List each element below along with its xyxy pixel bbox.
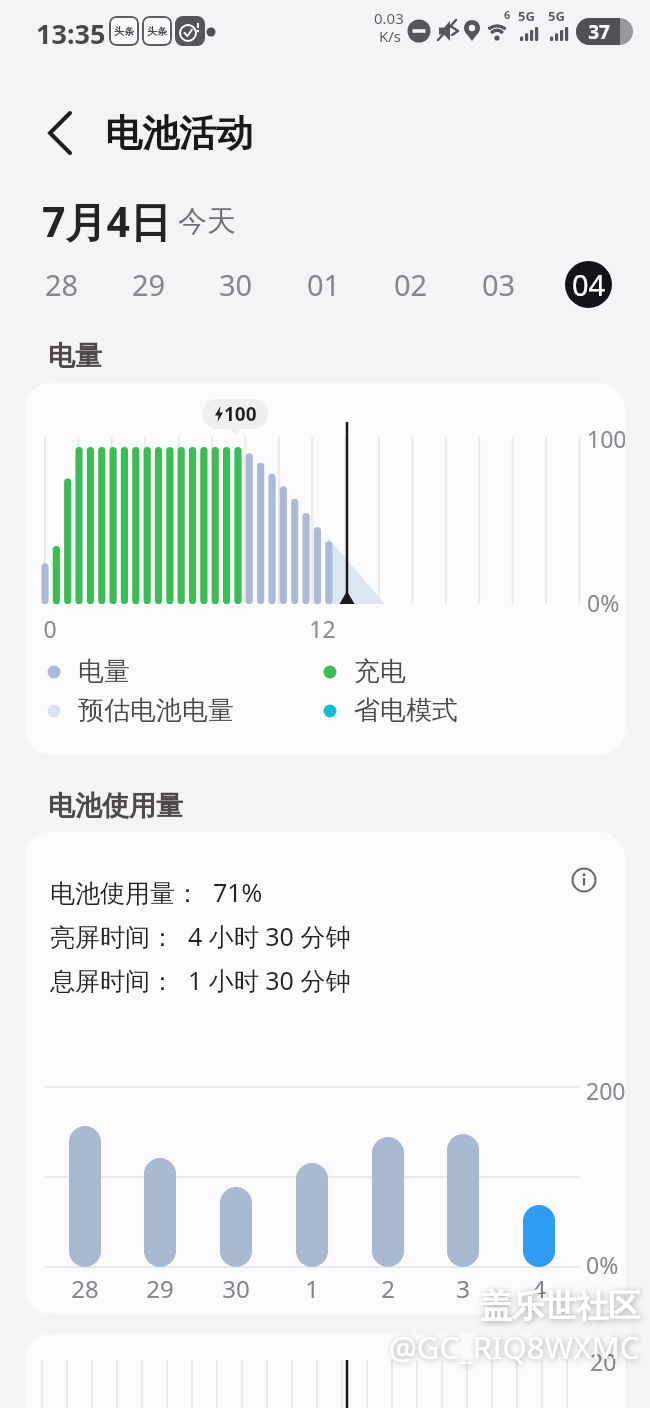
button[interactable]: 03 (469, 260, 529, 308)
staticText: @GC_RIQ8WXMC (389, 1326, 640, 1368)
button[interactable]: 28 (32, 260, 92, 308)
button[interactable] (30, 105, 86, 161)
staticText: 200 (586, 1075, 625, 1106)
staticText: 13:35 (36, 15, 106, 52)
staticText: 电量 (48, 339, 102, 373)
staticText: 20 (590, 1346, 617, 1377)
staticText: 37 (588, 19, 610, 45)
staticText: 100 (587, 423, 625, 454)
staticText: 0 (43, 613, 57, 644)
staticText: 充电 (354, 655, 406, 688)
staticText: 6 (504, 7, 511, 22)
staticText: 12 (309, 613, 336, 644)
button[interactable]: 30 (206, 260, 266, 308)
staticText: 28 (71, 1272, 99, 1305)
staticText: 01 (307, 265, 341, 304)
staticText: 电池活动 (105, 110, 253, 157)
staticText: 5G (548, 7, 565, 25)
staticText: 0% (586, 1249, 619, 1280)
button[interactable]: 04 (565, 261, 612, 308)
staticText: 28 (45, 265, 79, 304)
staticText: 电池使用量 (48, 789, 183, 823)
staticText: 100 (224, 401, 257, 427)
staticText: K/s (379, 26, 402, 46)
staticText: 1 (305, 1272, 319, 1305)
button[interactable] (570, 866, 598, 894)
staticText: 30 (219, 265, 253, 304)
staticText: 29 (132, 265, 166, 304)
staticText: 省电模式 (354, 694, 458, 727)
button[interactable]: 01 (294, 260, 354, 308)
staticText: 03 (482, 265, 516, 304)
staticText: 电池使用量： 71% (50, 875, 263, 909)
staticText: 电量 (78, 655, 130, 688)
staticText: 04 (572, 265, 606, 304)
staticText: 5G (518, 7, 535, 25)
staticText: 盖乐世社区 (480, 1286, 640, 1326)
staticText: 3 (456, 1272, 470, 1305)
button[interactable]: 02 (381, 260, 441, 308)
staticText: 头条 (114, 25, 134, 38)
staticText: 亮屏时间： 4 小时 30 分钟 (50, 919, 351, 953)
staticText: 02 (394, 265, 428, 304)
staticText: 预估电池电量 (78, 694, 234, 727)
staticText: 7月4日 (42, 193, 171, 249)
staticText: 0.03 (374, 8, 404, 28)
staticText: 头条 (147, 25, 167, 38)
button[interactable]: 29 (119, 260, 179, 308)
staticText: 29 (146, 1272, 174, 1305)
staticText: 0% (587, 587, 620, 618)
staticText: 息屏时间： 1 小时 30 分钟 (50, 963, 351, 997)
staticText: 30 (222, 1272, 250, 1305)
staticText: 4 (532, 1272, 546, 1305)
staticText: 今天 (178, 203, 236, 240)
staticText: 2 (381, 1272, 395, 1305)
